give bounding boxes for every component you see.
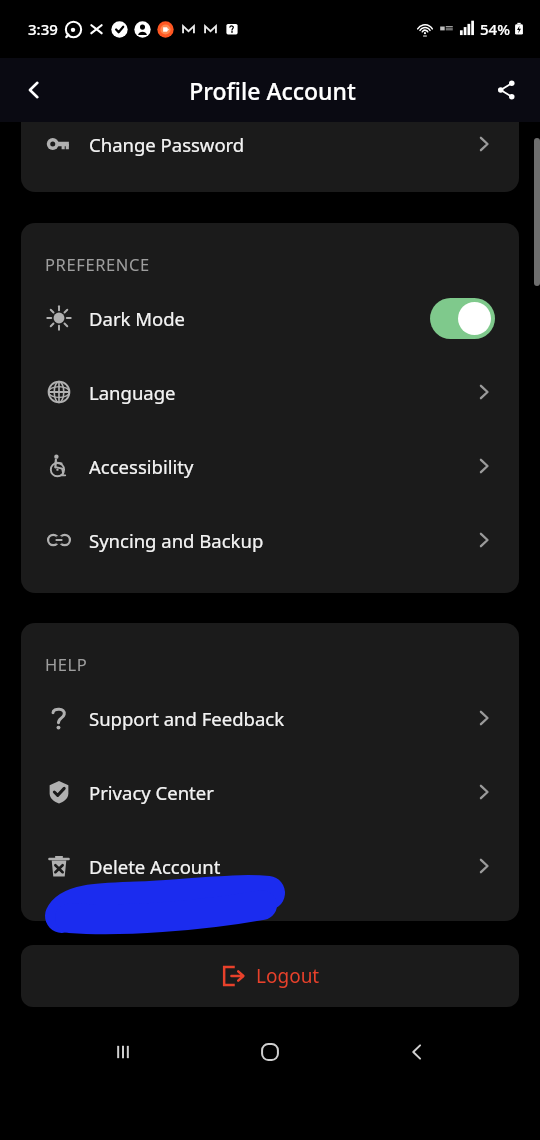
button[interactable]: Syncing and Backup (21, 503, 519, 577)
staticText: Accessibility (89, 454, 473, 479)
button[interactable]: Recents (99, 1028, 147, 1076)
staticText: Language (89, 380, 473, 405)
staticText: Dark Mode (89, 306, 430, 331)
staticText: Profile Account (189, 75, 356, 106)
button[interactable]: Language (21, 355, 519, 429)
staticText: Syncing and Backup (89, 528, 473, 553)
button[interactable]: Back (393, 1028, 441, 1076)
button[interactable]: Logout (21, 945, 519, 1007)
button[interactable]: Share (484, 68, 528, 112)
button[interactable]: Support and Feedback (21, 681, 519, 755)
button[interactable]: Home (246, 1028, 294, 1076)
staticText: Support and Feedback (89, 706, 473, 731)
button[interactable]: Delete Account (21, 829, 519, 903)
staticText: Privacy Center (89, 780, 473, 805)
staticText: Change Password (89, 132, 473, 157)
button[interactable]: Dark Mode toggle (430, 298, 495, 339)
staticText: Delete Account (89, 854, 473, 879)
button[interactable]: Back (12, 68, 56, 112)
button[interactable]: Accessibility (21, 429, 519, 503)
staticText: HELP (45, 653, 88, 675)
staticText: 54% (480, 19, 510, 39)
staticText: 3:39 (28, 19, 58, 39)
staticText: Logout (256, 963, 320, 989)
button[interactable]: Change Password (21, 122, 519, 166)
staticText: PREFERENCE (45, 253, 150, 275)
button[interactable]: Dark Mode (21, 281, 519, 355)
button[interactable]: Privacy Center (21, 755, 519, 829)
